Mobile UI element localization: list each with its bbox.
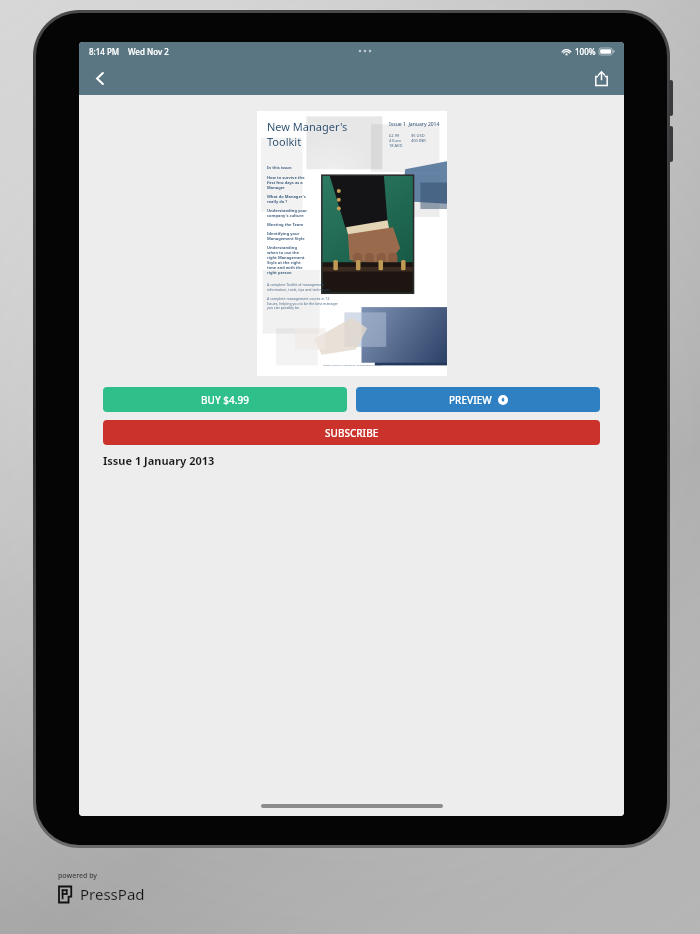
staticText: 400 INR [411, 138, 426, 143]
button[interactable]: Back [83, 61, 117, 95]
button[interactable]: PREVIEW [356, 387, 600, 412]
staticText: Issue 1 January 2013 [103, 453, 215, 468]
button[interactable]: New Manager's [257, 111, 447, 376]
staticText: 4 Euro [389, 138, 402, 143]
staticText: 18 AED [389, 143, 403, 148]
staticText: Meeting the Team [267, 222, 304, 227]
staticText: Wed Nov 2 [128, 46, 169, 57]
staticText: New Manager's [267, 119, 348, 134]
staticText: PREVIEW [449, 393, 492, 407]
staticText: A complete management course in 12 Issue… [267, 296, 339, 310]
staticText: In this issue: [267, 165, 293, 170]
staticText: PressPad [80, 884, 145, 904]
button[interactable]: BUY $4.99 [103, 387, 347, 412]
staticText: Issue 1 January 2014 [389, 121, 440, 128]
staticText: A complete Toolkit of management informa… [267, 282, 331, 292]
staticText: 100% [575, 46, 596, 57]
staticText: £2.99 [389, 133, 400, 138]
staticText: 8:14 PM [89, 46, 120, 57]
staticText: Understanding when to use the right Mana… [267, 245, 305, 275]
staticText: $5 USD [411, 133, 425, 138]
staticText: Toolkit [267, 134, 302, 149]
button[interactable]: Share [584, 61, 618, 95]
staticText: SUBSCRIBE [325, 426, 379, 440]
staticText: What do Manager's really do ? [267, 194, 306, 204]
staticText: BUY $4.99 [201, 393, 249, 407]
staticText: Identifying your Management Style [267, 231, 305, 241]
staticText: How to survive the first few days as a M… [267, 175, 305, 190]
staticText: Understanding your company's culture [267, 208, 308, 218]
button[interactable]: SUBSCRIBE [103, 420, 600, 445]
staticText: powered by [58, 871, 98, 881]
staticText: image courtesy & reference: freedigitalp… [323, 363, 382, 366]
